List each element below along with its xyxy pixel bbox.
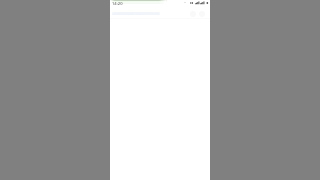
staticText: 14:20 [112,1,123,7]
